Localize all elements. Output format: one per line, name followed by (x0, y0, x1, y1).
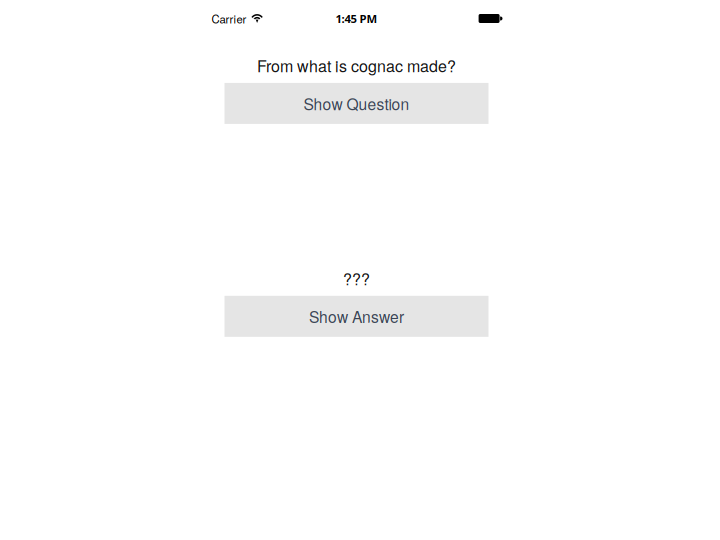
button[interactable]: Show Answer (224, 296, 488, 337)
staticText: 1:45 PM (335, 11, 377, 26)
button[interactable]: Show Question (224, 83, 488, 124)
staticText: Carrier (211, 10, 246, 27)
staticText: Show Answer (309, 305, 404, 327)
staticText: From what is cognac made? (257, 54, 456, 77)
staticText: Show Question (303, 92, 409, 114)
staticText: ??? (343, 267, 370, 290)
